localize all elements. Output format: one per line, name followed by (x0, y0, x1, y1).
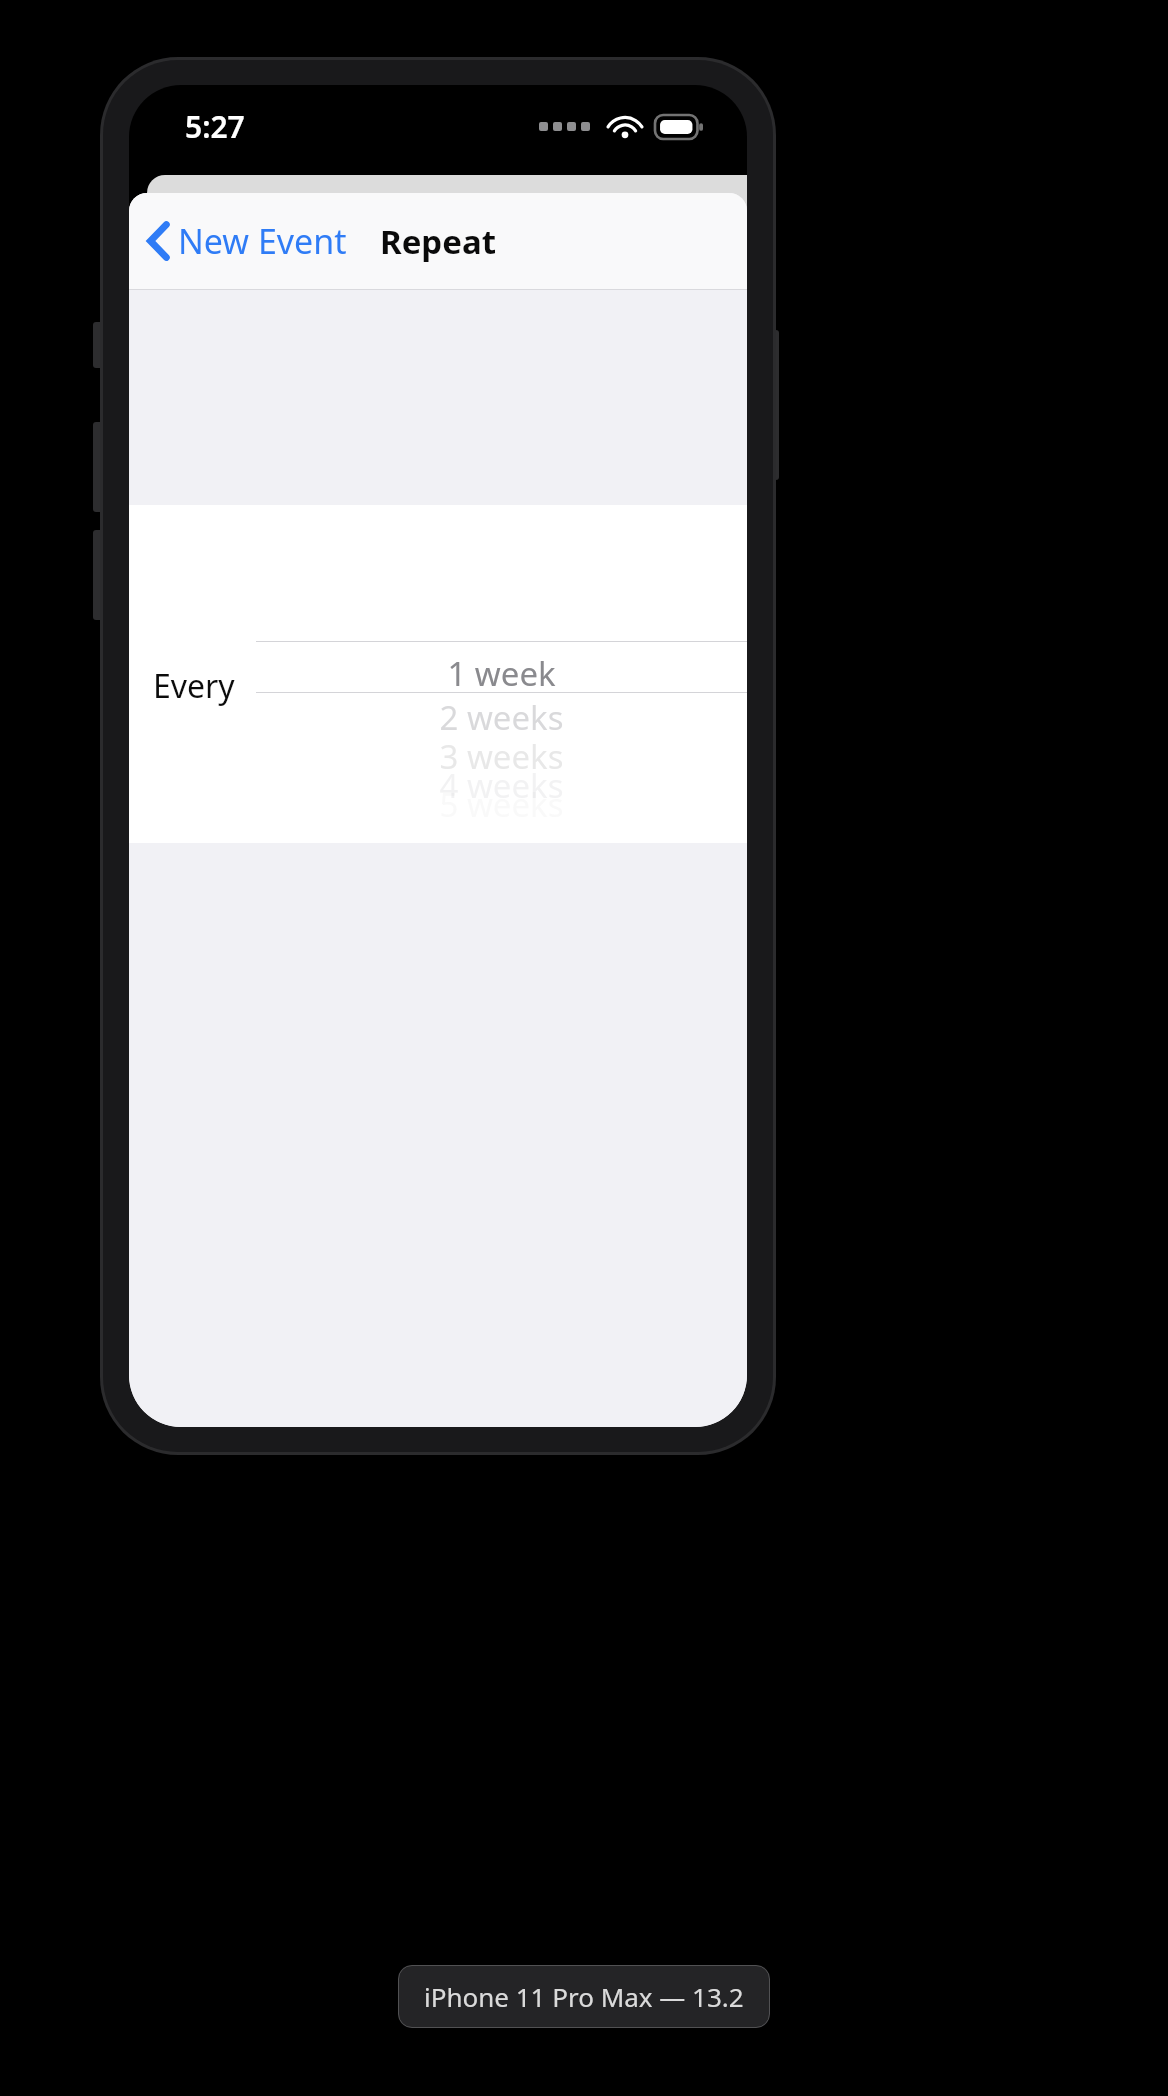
staticText: iPhone 11 Pro Max — 13.2 (424, 1979, 744, 2014)
staticText: 3 weeks (256, 734, 747, 779)
staticText: 1 week (256, 651, 747, 696)
button[interactable]: Back (129, 206, 363, 276)
staticText: 4 weeks (256, 763, 747, 808)
button[interactable]: Repeat interval picker (256, 505, 747, 843)
staticText: Repeat (380, 219, 496, 264)
staticText: 2 weeks (256, 695, 747, 740)
staticText: 5:27 (185, 106, 245, 147)
staticText: Every (153, 664, 235, 708)
staticText: New Event (178, 218, 347, 264)
other: Back (147, 221, 170, 261)
